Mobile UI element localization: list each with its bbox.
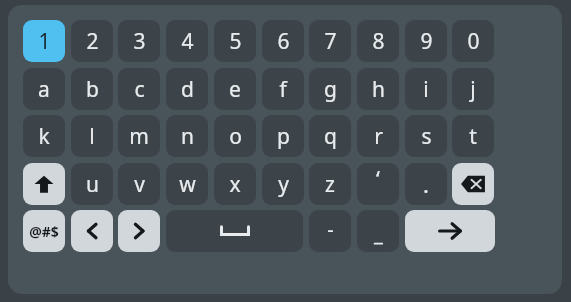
button[interactable]: s <box>405 115 447 157</box>
button[interactable]: g <box>309 68 351 110</box>
staticText: r <box>374 122 383 151</box>
staticText: 0 <box>467 27 480 56</box>
button[interactable]: 6 <box>262 20 304 62</box>
staticText: i <box>423 75 429 104</box>
staticText: e <box>229 75 241 104</box>
button[interactable]: p <box>262 115 304 157</box>
button[interactable]: v <box>118 163 160 205</box>
button[interactable]: Enter <box>405 210 495 252</box>
staticText: 2 <box>86 27 99 56</box>
staticText: u <box>86 170 99 199</box>
staticText: 9 <box>420 27 433 56</box>
staticText: y <box>278 170 289 199</box>
button[interactable]: . <box>405 163 447 205</box>
button[interactable]: _ <box>357 210 399 252</box>
staticText: b <box>86 75 99 104</box>
button[interactable]: 0 <box>452 20 494 62</box>
button[interactable]: u <box>71 163 113 205</box>
staticText: o <box>229 122 242 151</box>
staticText: 1 <box>38 27 51 56</box>
staticText: 8 <box>372 27 385 56</box>
staticText: p <box>277 122 290 151</box>
button[interactable]: d <box>166 68 208 110</box>
staticText: 5 <box>229 27 242 56</box>
button[interactable]: 2 <box>71 20 113 62</box>
button[interactable]: 9 <box>405 20 447 62</box>
staticText: a <box>38 75 50 104</box>
button[interactable]: o <box>214 115 256 157</box>
staticText: s <box>421 122 432 151</box>
button[interactable]: Backspace <box>452 163 494 205</box>
staticText: 3 <box>133 27 146 56</box>
staticText: k <box>38 122 50 151</box>
staticText: - <box>327 216 334 243</box>
button[interactable]: r <box>357 115 399 157</box>
button[interactable]: y <box>262 163 304 205</box>
staticText: _ <box>374 220 383 247</box>
button[interactable]: Space <box>166 210 303 252</box>
staticText: v <box>134 170 145 199</box>
staticText: t <box>469 122 477 151</box>
button[interactable]: t <box>452 115 494 157</box>
staticText: 4 <box>181 27 194 56</box>
button[interactable]: - <box>309 210 351 252</box>
button[interactable]: 3 <box>118 20 160 62</box>
button[interactable]: m <box>118 115 160 157</box>
staticText: q <box>324 122 337 151</box>
button[interactable]: n <box>166 115 208 157</box>
button[interactable]: @#$ <box>23 210 65 252</box>
button[interactable]: 1 <box>23 20 65 62</box>
staticText: 7 <box>324 27 337 56</box>
staticText: n <box>181 122 194 151</box>
button[interactable]: k <box>23 115 65 157</box>
button[interactable]: l <box>71 115 113 157</box>
staticText: z <box>325 170 335 199</box>
button[interactable]: 5 <box>214 20 256 62</box>
staticText: m <box>129 122 149 151</box>
staticText: l <box>89 122 95 151</box>
staticText: h <box>372 75 385 104</box>
staticText: . <box>423 169 429 199</box>
button[interactable]: 8 <box>357 20 399 62</box>
button[interactable]: 4 <box>166 20 208 62</box>
staticText: c <box>134 75 145 104</box>
button[interactable]: i <box>405 68 447 110</box>
button[interactable]: w <box>166 163 208 205</box>
button[interactable]: h <box>357 68 399 110</box>
button[interactable]: z <box>309 163 351 205</box>
button[interactable]: f <box>262 68 304 110</box>
button[interactable]: e <box>214 68 256 110</box>
button[interactable]: Shift <box>23 163 65 205</box>
staticText: j <box>470 75 476 104</box>
staticText: 6 <box>277 27 290 56</box>
staticText: g <box>324 75 337 104</box>
staticText: w <box>179 170 196 199</box>
button[interactable]: 7 <box>309 20 351 62</box>
staticText: ‘ <box>376 163 380 193</box>
staticText: @#$ <box>29 222 59 241</box>
button[interactable]: b <box>71 68 113 110</box>
button[interactable]: x <box>214 163 256 205</box>
button[interactable]: ‘ <box>357 163 399 205</box>
button[interactable]: q <box>309 115 351 157</box>
staticText: d <box>181 75 194 104</box>
button[interactable]: Move cursor right <box>118 210 160 252</box>
staticText: f <box>279 75 287 104</box>
button[interactable]: a <box>23 68 65 110</box>
button[interactable]: c <box>118 68 160 110</box>
button[interactable]: j <box>452 68 494 110</box>
button[interactable]: Move cursor left <box>71 210 113 252</box>
staticText: x <box>229 170 241 199</box>
